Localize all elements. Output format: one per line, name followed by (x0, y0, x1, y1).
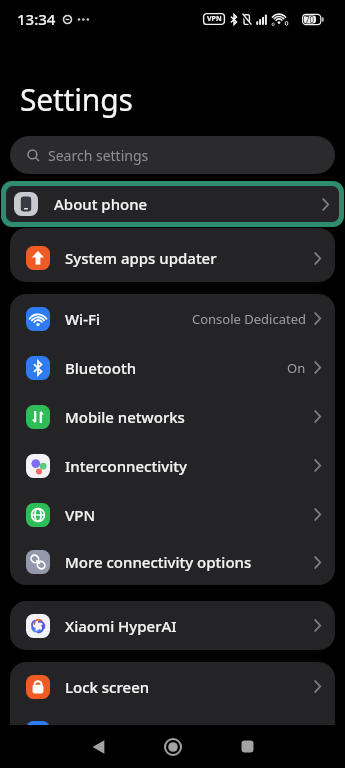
button[interactable]: System apps updater (10, 234, 335, 282)
button[interactable] (210, 725, 284, 768)
button[interactable]: Bluetooth (10, 343, 335, 392)
staticText: Wi-Fi (65, 309, 100, 329)
staticText: More connectivity options (65, 552, 252, 572)
staticText: Mobile networks (65, 407, 185, 427)
button[interactable]: Wi-Fi (10, 294, 335, 343)
staticText: 70 (305, 14, 315, 25)
button[interactable] (62, 725, 136, 768)
staticText: Settings (20, 79, 133, 120)
button[interactable]: Mobile networks (10, 392, 335, 441)
staticText: Xiaomi HyperAI (65, 616, 177, 636)
staticText: Console Dedicated (192, 310, 306, 328)
button[interactable]: More connectivity options (10, 539, 335, 585)
staticText: 13:34 (17, 9, 56, 29)
staticText: Bluetooth (65, 358, 137, 378)
button[interactable] (136, 725, 210, 768)
button[interactable]: Interconnectivity (10, 441, 335, 490)
staticText: VPN (207, 14, 222, 24)
button[interactable]: Xiaomi HyperAI (10, 601, 335, 650)
staticText: Search settings (48, 146, 149, 165)
staticText: Lock screen (65, 677, 150, 697)
staticText: On (287, 359, 306, 377)
button[interactable]: Lock screen (10, 662, 335, 711)
staticText: System apps updater (65, 248, 217, 268)
button[interactable]: VPN (10, 490, 335, 539)
staticText: VPN (65, 505, 96, 525)
staticText: About phone (54, 194, 148, 214)
staticText: Interconnectivity (65, 456, 187, 476)
button[interactable]: About phone (6, 186, 339, 222)
button[interactable]: Search settings (10, 136, 335, 174)
